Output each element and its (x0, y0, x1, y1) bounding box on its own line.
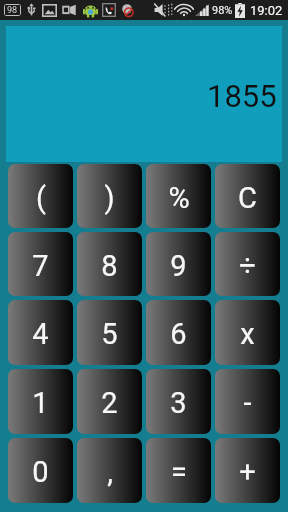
staticText: , (107, 455, 113, 489)
staticText: 7 (32, 249, 49, 283)
other: Mobile signal (195, 4, 209, 16)
other: New message (62, 4, 76, 16)
staticText: C (238, 181, 257, 215)
staticText: 4 (32, 317, 49, 351)
staticText: - (243, 386, 252, 420)
staticText: 9 (170, 249, 187, 283)
other: USB connected (27, 3, 36, 17)
staticText: x (240, 317, 255, 351)
other: Downloads (4, 4, 21, 16)
staticText: 8 (101, 249, 118, 283)
button[interactable]: , (77, 438, 142, 503)
staticText: = (171, 455, 187, 489)
button[interactable]: 1 (8, 369, 73, 434)
staticText: 19:02 (250, 3, 283, 18)
button[interactable]: + (215, 438, 280, 503)
button[interactable]: 1855 (6, 26, 282, 162)
button[interactable]: = (146, 438, 211, 503)
button[interactable]: 7 (8, 232, 73, 296)
other: Wi-Fi signal (176, 3, 192, 17)
staticText: 5 (101, 317, 118, 351)
staticText: 0 (32, 455, 49, 489)
staticText: 6 (170, 317, 187, 351)
button[interactable]: ( (8, 164, 73, 228)
other: Screenshot saved (42, 4, 57, 17)
staticText: 98% (212, 4, 233, 17)
button[interactable]: 5 (77, 300, 142, 365)
staticText: + (239, 455, 256, 489)
staticText: 2 (101, 386, 118, 420)
button[interactable]: C (215, 164, 280, 228)
button[interactable]: 6 (146, 300, 211, 365)
button[interactable]: 4 (8, 300, 73, 365)
button[interactable]: ) (77, 164, 142, 228)
staticText: ÷ (239, 249, 256, 283)
button[interactable]: 3 (146, 369, 211, 434)
staticText: ( (36, 181, 46, 215)
other: System update (83, 3, 98, 18)
other: Battery charging (235, 3, 245, 18)
other: Missed call (102, 3, 116, 17)
other: Do not disturb (120, 3, 136, 18)
button[interactable]: 8 (77, 232, 142, 296)
staticText: ) (104, 181, 115, 215)
staticText: % (168, 181, 190, 215)
staticText: 3 (170, 386, 187, 420)
button[interactable]: % (146, 164, 211, 228)
staticText: 98 (7, 5, 18, 15)
button[interactable]: x (215, 300, 280, 365)
button[interactable]: 0 (8, 438, 73, 503)
staticText: 1 (32, 386, 49, 420)
button[interactable]: 9 (146, 232, 211, 296)
button[interactable]: ÷ (215, 232, 280, 296)
other: Silent mode (153, 3, 173, 17)
button[interactable]: - (215, 369, 280, 434)
staticText: 1855 (207, 78, 277, 114)
button[interactable]: 2 (77, 369, 142, 434)
